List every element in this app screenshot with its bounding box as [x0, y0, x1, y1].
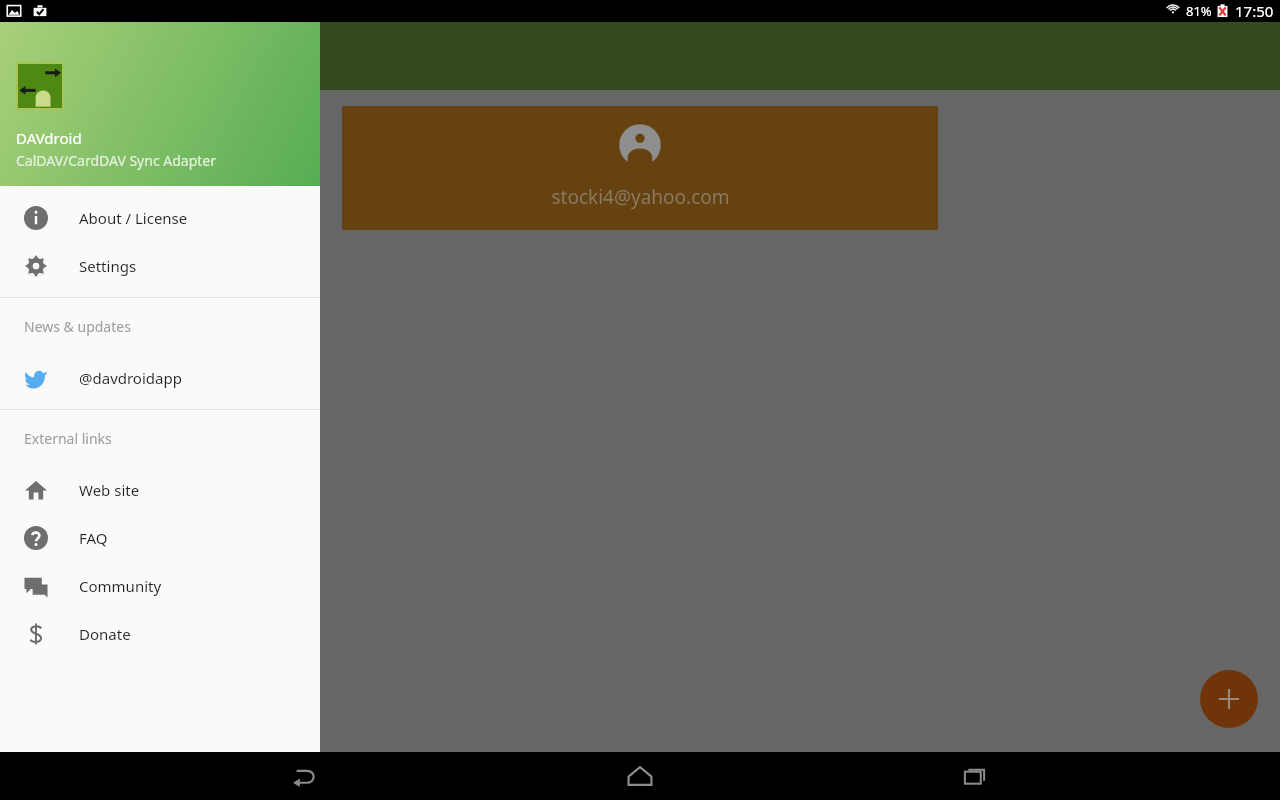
staticText: Donate — [79, 624, 131, 644]
staticText: DAVdroid — [16, 128, 82, 148]
button[interactable]: Add account — [1200, 670, 1258, 728]
staticText: 17:50 — [1235, 1, 1274, 21]
button[interactable]: Back — [275, 752, 335, 800]
button[interactable]: stocki4@yahoo.com — [342, 106, 938, 230]
button[interactable]: Recents — [945, 752, 1005, 800]
staticText: Web site — [79, 480, 140, 500]
button[interactable]: FAQ — [0, 514, 320, 562]
staticText: External links — [24, 429, 112, 448]
staticText: FAQ — [79, 528, 108, 548]
staticText: Community — [79, 576, 162, 596]
staticText: 81% — [1186, 2, 1212, 20]
button[interactable]: Community — [0, 562, 320, 610]
staticText: About / License — [79, 208, 188, 228]
button[interactable]: Web site — [0, 466, 320, 514]
button[interactable]: Settings — [0, 242, 320, 290]
staticText: CalDAV/CardDAV Sync Adapter — [16, 151, 217, 170]
button[interactable]: Home — [610, 752, 670, 800]
staticText: News & updates — [24, 317, 131, 336]
staticText: @davdroidapp — [79, 368, 182, 388]
button[interactable]: Donate — [0, 610, 320, 658]
staticText: Settings — [79, 256, 137, 276]
button[interactable]: @davdroidapp — [0, 354, 320, 402]
button[interactable]: About / License — [0, 194, 320, 242]
button[interactable]: DAVdroid — [0, 22, 320, 186]
staticText: stocki4@yahoo.com — [551, 184, 730, 210]
